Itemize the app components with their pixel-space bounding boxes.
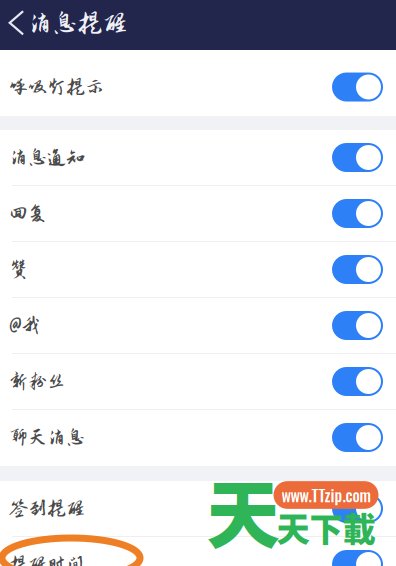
button[interactable]: 回复 bbox=[0, 186, 396, 241]
staticText: 回复 bbox=[9, 203, 47, 224]
staticText: 聊天消息 bbox=[9, 427, 85, 448]
button[interactable]: 呼吸灯提示 bbox=[0, 59, 396, 115]
button[interactable]: 聊天消息 bbox=[0, 410, 396, 465]
button[interactable]: 签到提醒 bbox=[0, 481, 396, 536]
staticText: 新粉丝 bbox=[9, 371, 66, 392]
button[interactable]: 赞 bbox=[0, 242, 396, 297]
staticText: www.TTzip.com bbox=[281, 483, 370, 507]
button[interactable]: 新粉丝 bbox=[0, 354, 396, 409]
staticText: 签到提醒 bbox=[9, 498, 85, 519]
staticText: 呼吸灯提示 bbox=[9, 76, 104, 98]
button[interactable]: @我 bbox=[0, 298, 396, 353]
staticText: 消息提醒 bbox=[27, 9, 127, 37]
staticText: 提醒时间 bbox=[9, 554, 85, 566]
button[interactable]: 提醒时间 bbox=[0, 537, 396, 566]
staticText: @我 bbox=[9, 315, 40, 336]
staticText: 天 bbox=[206, 457, 279, 563]
staticText: 天下載 bbox=[276, 503, 375, 551]
staticText: 消息通知 bbox=[9, 147, 85, 168]
button[interactable]: 消息通知 bbox=[0, 130, 396, 185]
staticText: 赞 bbox=[9, 259, 28, 280]
button[interactable]: 消息提醒 bbox=[0, 0, 139, 50]
